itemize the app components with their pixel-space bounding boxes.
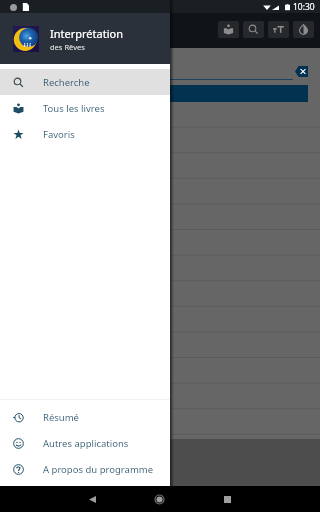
staticText: Interprétation <box>50 26 123 41</box>
button[interactable]: Books <box>218 21 239 38</box>
button[interactable]: Search <box>243 21 264 38</box>
staticText: Recherche <box>43 76 90 89</box>
staticText: Tous les livres <box>43 102 105 115</box>
button[interactable]: Clear search <box>295 66 308 77</box>
button[interactable]: Résumé <box>0 404 170 430</box>
button[interactable]: Text size <box>268 21 289 38</box>
button[interactable]: Home <box>147 489 172 509</box>
button[interactable]: A propos du programme <box>0 456 170 482</box>
button[interactable]: Recents <box>215 489 240 509</box>
staticText: Autres applications <box>43 437 129 450</box>
staticText: 10:30 <box>293 1 315 13</box>
button[interactable]: Back <box>80 489 105 509</box>
staticText: A propos du programme <box>43 463 154 476</box>
button[interactable]: Autres applications <box>0 430 170 456</box>
staticText: Favoris <box>43 128 75 141</box>
button[interactable]: Contrast <box>293 21 314 38</box>
staticText: des Rêves <box>50 42 85 52</box>
button[interactable]: Favoris <box>0 121 170 147</box>
button[interactable]: Tous les livres <box>0 95 170 121</box>
button[interactable]: Interprétation <box>0 13 170 64</box>
staticText: Résumé <box>43 411 79 424</box>
button[interactable]: Recherche <box>0 69 170 95</box>
